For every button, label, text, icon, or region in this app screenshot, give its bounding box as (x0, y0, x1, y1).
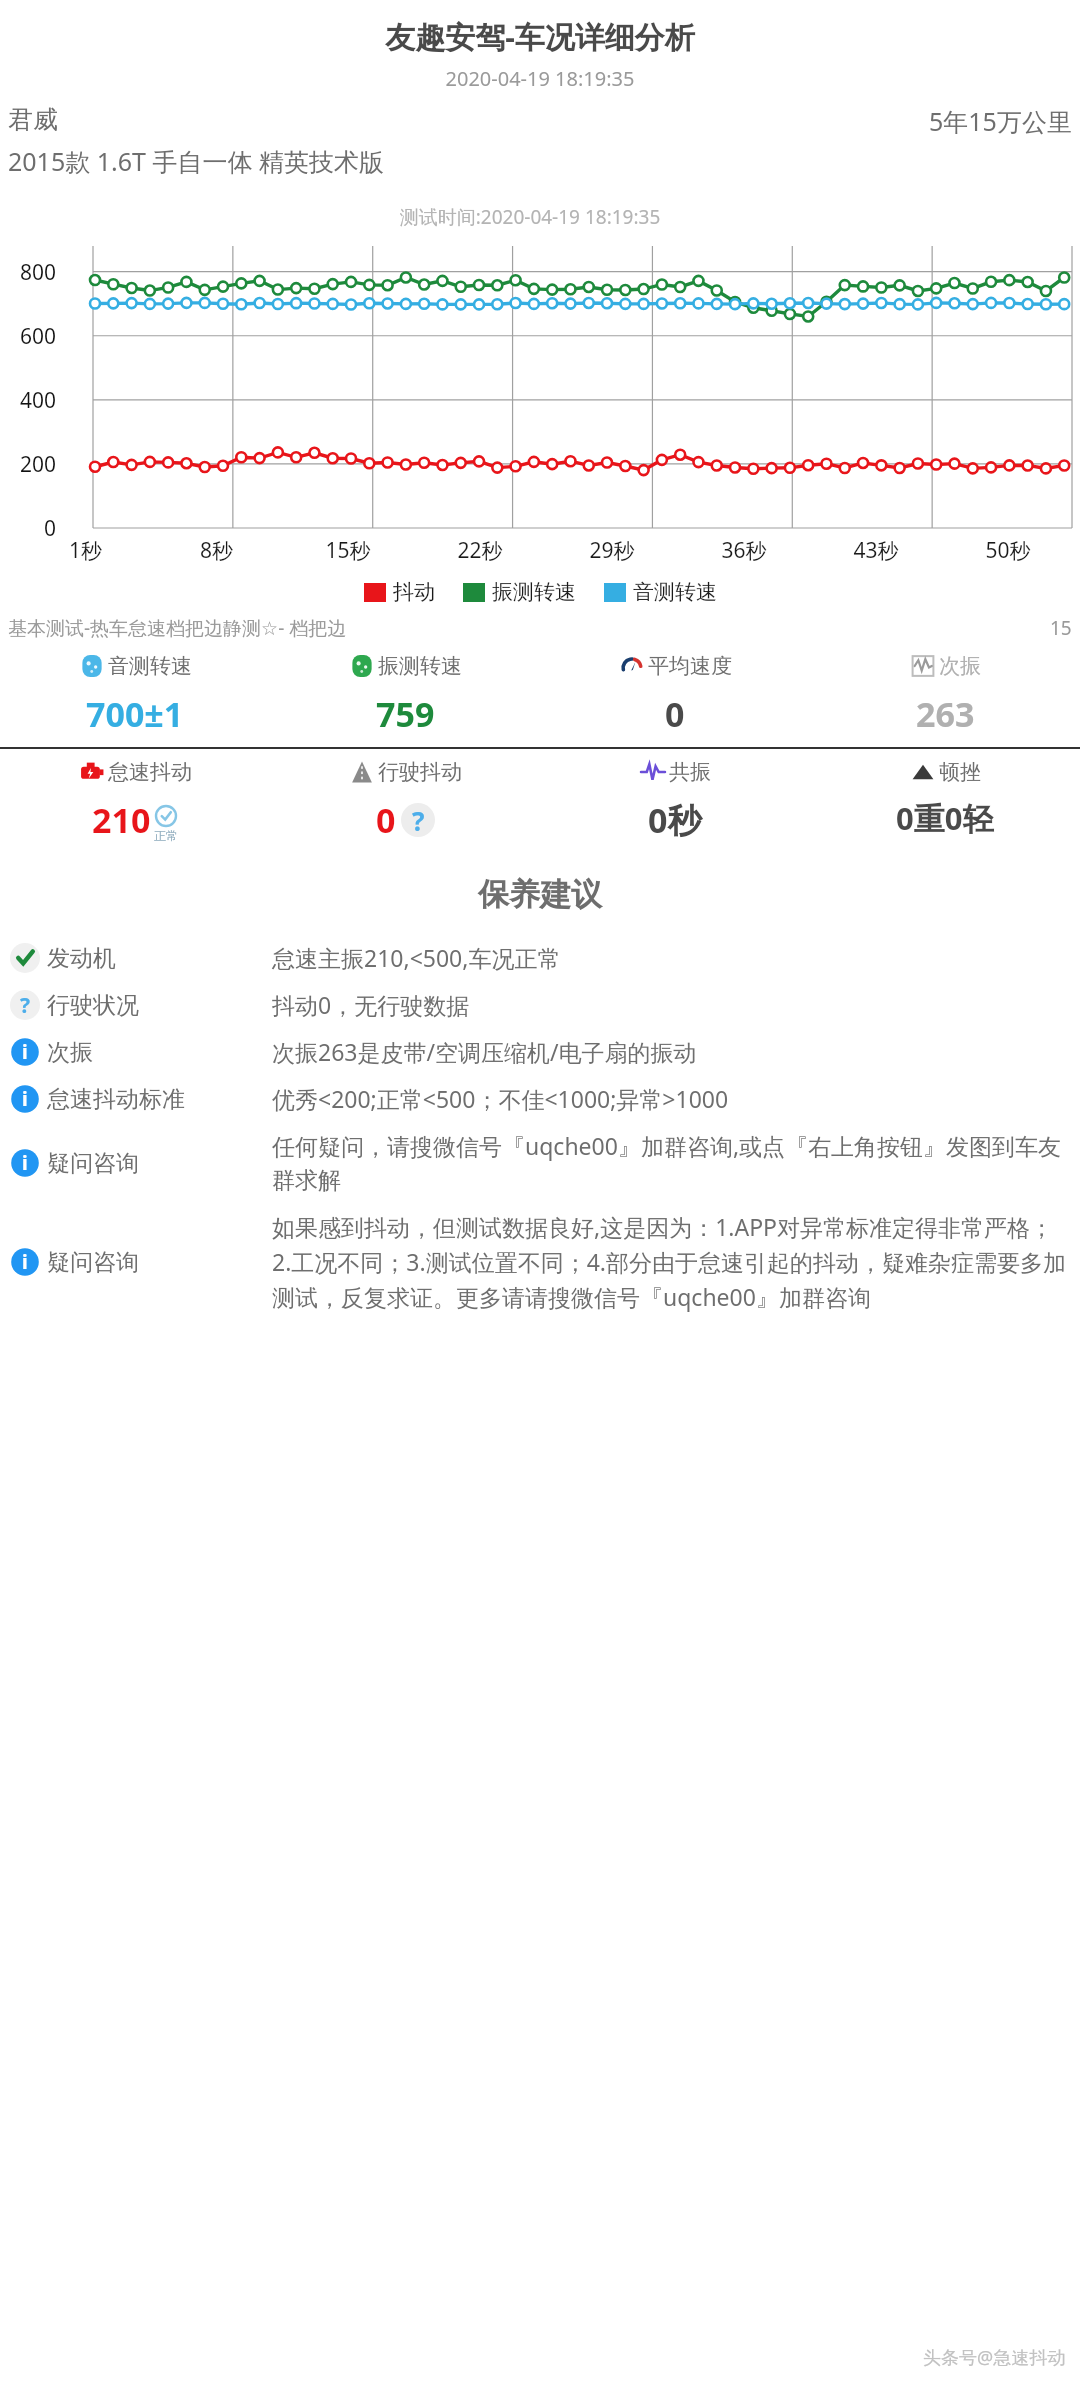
staticText: 次振 (47, 1038, 93, 1067)
staticText: ? (20, 991, 31, 1020)
staticText: 疑问咨询 (47, 1248, 139, 1277)
staticText: 5年15万公里 (929, 104, 1072, 138)
staticText: 怠速主振210,<500,车况正常 (272, 942, 1070, 973)
staticText: 次振 (939, 653, 981, 679)
staticText: 行驶抖动 (378, 759, 462, 785)
staticText: 700±1 (86, 691, 184, 737)
staticText: 怠速抖动标准 (47, 1085, 185, 1114)
other: OK (10, 943, 40, 973)
staticText: 共振 (669, 759, 711, 785)
staticText: 400 (0, 386, 56, 415)
staticText: 8秒 (151, 536, 282, 565)
staticText: 行驶状况 (47, 991, 139, 1020)
staticText: i (22, 1039, 28, 1065)
staticText: i (22, 1249, 28, 1275)
other: Idle shake (79, 759, 105, 785)
staticText: 君威 (8, 104, 58, 135)
button[interactable]: Info (0, 1203, 1080, 1321)
staticText: 0秒 (648, 797, 702, 843)
staticText: 发动机 (47, 944, 116, 973)
other: Jerk (910, 759, 936, 785)
other: Average speed (619, 653, 645, 679)
staticText: 抖动 (393, 579, 435, 605)
staticText: 2020-04-19 18:19:35 (0, 65, 1080, 92)
button[interactable]: Sound RPM (0, 649, 270, 741)
staticText: 600 (0, 322, 56, 351)
staticText: 0 (665, 691, 685, 737)
other: Vibration RPM (349, 653, 375, 679)
staticText: 0 (376, 797, 396, 843)
other: Unknown (10, 990, 40, 1020)
button[interactable]: Vibration RPM (270, 649, 540, 741)
other: Driving shake (349, 759, 375, 785)
staticText: 210 (92, 797, 151, 843)
button[interactable]: Info (0, 1075, 1080, 1122)
staticText: 22秒 (414, 536, 546, 565)
other: Secondary vibration (910, 653, 936, 679)
staticText: 0 (0, 514, 56, 543)
staticText: 800 (0, 258, 56, 287)
staticText: 43秒 (810, 536, 942, 565)
button[interactable]: Driving shake (270, 755, 540, 847)
staticText: 263 (916, 691, 975, 737)
staticText: 任何疑问，请搜微信号『uqche00』加群咨询,或点『右上角按钮』发图到车友群求… (272, 1130, 1070, 1195)
button[interactable]: Average speed (540, 649, 810, 741)
button[interactable]: Info (0, 1122, 1080, 1203)
button[interactable]: 抖动 (362, 577, 437, 607)
staticText: 1秒 (20, 536, 151, 565)
staticText: i (22, 1086, 28, 1112)
staticText: 音测转速 (633, 579, 717, 605)
staticText: 如果感到抖动，但测试数据良好,这是因为：1.APP对异常标准定得非常严格；2.工… (272, 1211, 1070, 1313)
other: Sound RPM (79, 653, 105, 679)
staticText: 正常 (154, 828, 178, 843)
button[interactable]: Secondary vibration (810, 649, 1080, 741)
staticText: ? (412, 803, 425, 837)
other: Info (10, 1247, 40, 1277)
staticText: 平均速度 (648, 653, 732, 679)
staticText: 基本测试-热车怠速档把边静测☆- 档把边 (8, 615, 347, 641)
button[interactable]: Info (0, 1028, 1080, 1075)
staticText: 怠速抖动 (108, 759, 192, 785)
staticText: 振测转速 (492, 579, 576, 605)
staticText: 音测转速 (108, 653, 192, 679)
button[interactable]: OK (0, 934, 1080, 981)
staticText: 15秒 (282, 536, 414, 565)
staticText: 50秒 (942, 536, 1074, 565)
staticText: 优秀<200;正常<500；不佳<1000;异常>1000 (272, 1083, 1070, 1114)
staticText: 保养建议 (0, 875, 1080, 914)
staticText: 疑问咨询 (47, 1149, 139, 1178)
staticText: i (22, 1150, 28, 1176)
staticText: 抖动0，无行驶数据 (272, 989, 1070, 1020)
button[interactable]: 音测转速 (602, 577, 719, 607)
other: Info (10, 1084, 40, 1114)
staticText: 顿挫 (939, 759, 981, 785)
staticText: 振测转速 (378, 653, 462, 679)
staticText: 友趣安驾-车况详细分析 (0, 16, 1080, 57)
staticText: 次振263是皮带/空调压缩机/电子扇的振动 (272, 1036, 1070, 1067)
button[interactable]: Idle shake (0, 755, 270, 847)
staticText: 0重0轻 (896, 797, 994, 839)
staticText: 36秒 (678, 536, 810, 565)
staticText: 29秒 (546, 536, 678, 565)
staticText: 759 (376, 691, 435, 737)
button[interactable]: Resonance (540, 755, 810, 847)
button[interactable]: 振测转速 (461, 577, 578, 607)
button[interactable]: Jerk (810, 755, 1080, 843)
staticText: 200 (0, 450, 56, 479)
staticText: 2015款 1.6T 手自一体 精英技术版 (8, 144, 384, 178)
staticText: 15 (1050, 615, 1072, 641)
button[interactable]: Unknown (0, 981, 1080, 1028)
staticText: 头条号@急速抖动 (923, 2345, 1066, 2370)
other: Info (10, 1148, 40, 1178)
staticText: 测试时间:2020-04-19 18:19:35 (0, 204, 1060, 230)
other: Info (10, 1037, 40, 1067)
other: Resonance (640, 759, 666, 785)
